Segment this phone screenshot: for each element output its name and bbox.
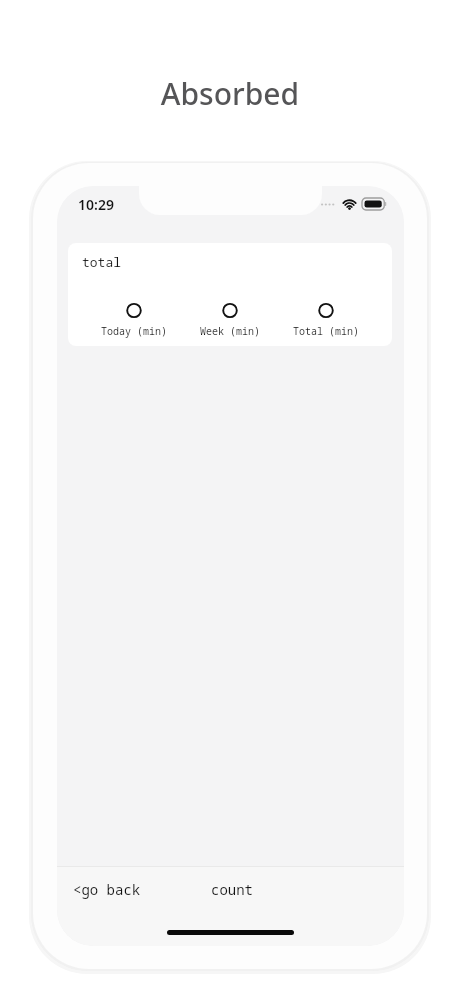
- staticText: Week (min): [200, 324, 260, 338]
- staticText: <go back: [73, 880, 141, 899]
- staticText: Today (min): [101, 324, 167, 338]
- button[interactable]: total: [68, 243, 392, 346]
- staticText: count: [211, 880, 253, 899]
- button[interactable]: <go back: [57, 872, 157, 906]
- staticText: total: [82, 253, 122, 271]
- staticText: Absorbed: [0, 73, 460, 114]
- button[interactable]: count: [195, 872, 269, 906]
- staticText: 10:29: [78, 195, 114, 214]
- staticText: Total (min): [293, 324, 359, 338]
